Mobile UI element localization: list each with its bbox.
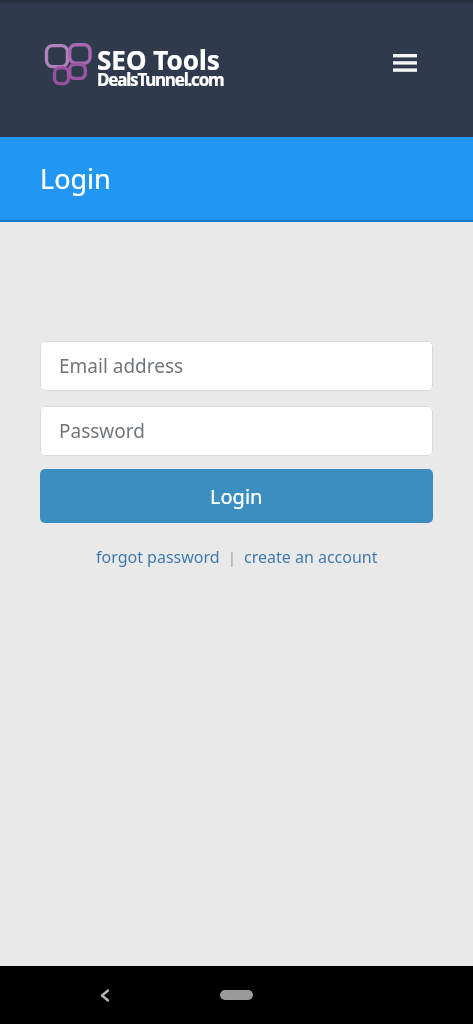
staticText: |: [220, 547, 244, 567]
staticText: Login: [210, 483, 263, 510]
button[interactable]: [220, 990, 253, 1000]
button[interactable]: Password: [40, 406, 433, 456]
button[interactable]: create an account: [244, 546, 378, 568]
button[interactable]: [385, 46, 425, 80]
button[interactable]: [85, 975, 125, 1015]
staticText: Password: [59, 418, 145, 444]
button[interactable]: SEO Tools: [46, 42, 224, 100]
staticText: Email address: [59, 353, 184, 379]
staticText: SEO Tools: [97, 42, 220, 77]
button[interactable]: Email address: [40, 341, 433, 391]
button[interactable]: Login: [40, 469, 433, 523]
button[interactable]: forgot password: [96, 546, 220, 568]
staticText: Login: [40, 160, 111, 197]
staticText: DealsTunnel.com: [97, 68, 224, 91]
